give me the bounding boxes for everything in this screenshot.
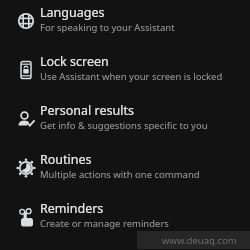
staticText: Routines bbox=[40, 151, 92, 168]
staticText: www.deuaq.com bbox=[162, 234, 237, 247]
button[interactable]: Languages bbox=[0, 0, 250, 43]
button[interactable]: Reminders bbox=[0, 190, 250, 239]
button[interactable]: Lock screen bbox=[0, 43, 250, 92]
staticText: Personal results bbox=[40, 102, 134, 119]
staticText: Get info & suggestions specific to you bbox=[40, 119, 208, 132]
staticText: Reminders bbox=[40, 200, 104, 217]
staticText: Multiple actions with one command bbox=[40, 168, 200, 181]
staticText: Languages bbox=[40, 4, 105, 21]
staticText: Create or manage reminders bbox=[40, 217, 169, 230]
staticText: Use Assistant when your screen is locked bbox=[40, 70, 223, 83]
staticText: For speaking to your Assistant bbox=[40, 21, 175, 34]
staticText: Lock screen bbox=[40, 53, 109, 70]
button[interactable]: Routines bbox=[0, 141, 250, 190]
button[interactable]: Personal results bbox=[0, 92, 250, 141]
